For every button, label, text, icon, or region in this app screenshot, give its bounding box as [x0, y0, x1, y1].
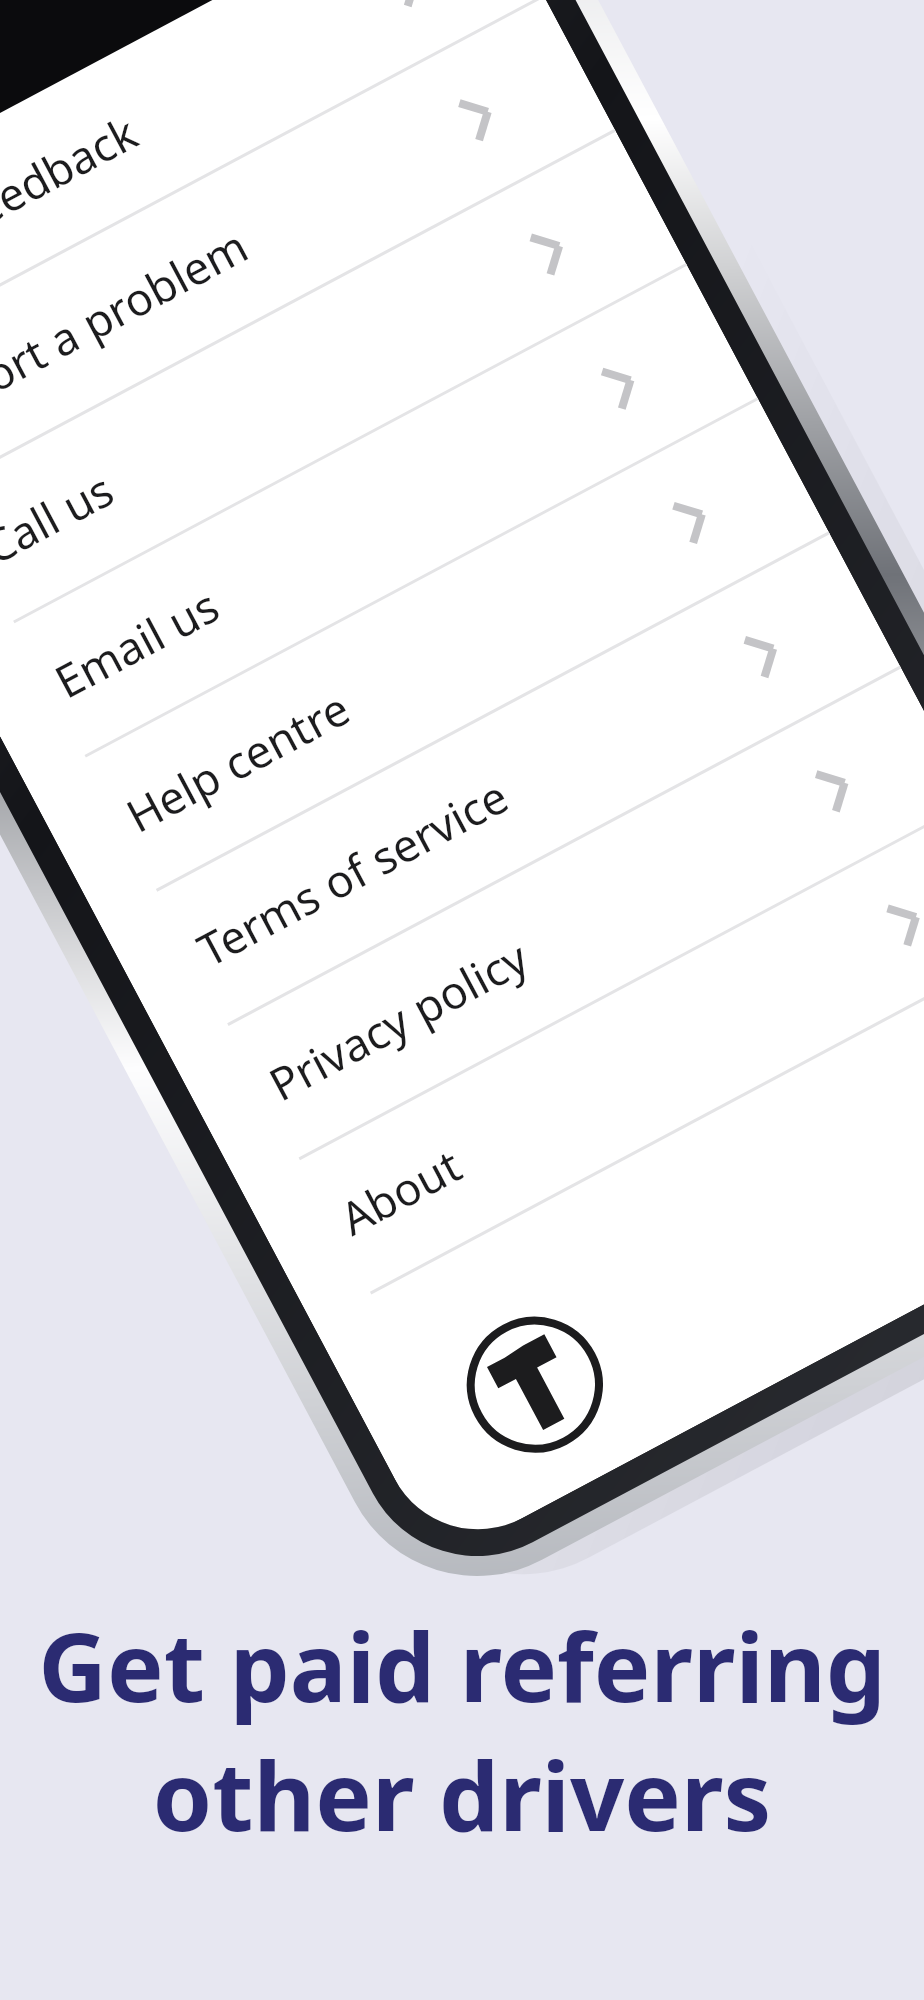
- button[interactable]: [120, 440, 480, 516]
- button[interactable]: [28, 524, 388, 600]
- button[interactable]: [216, 348, 576, 424]
- button[interactable]: [286, 262, 646, 338]
- staticText: other drivers: [0, 1729, 924, 1858]
- staticText: Get paid referring: [0, 1600, 924, 1729]
- button[interactable]: Back: [396, 162, 482, 248]
